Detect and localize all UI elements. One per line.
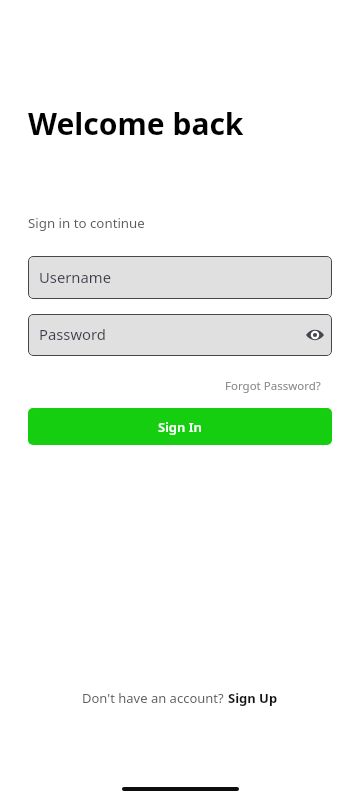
staticText: Don't have an account? [82, 689, 228, 707]
staticText: Sign Up [228, 689, 278, 707]
button[interactable]: Show password [303, 323, 327, 347]
staticText: Sign in to continue [28, 214, 145, 232]
button[interactable]: Sign Up [228, 689, 278, 707]
staticText: Username [39, 267, 111, 287]
staticText: Password [39, 324, 106, 344]
button[interactable]: Sign In [28, 408, 332, 445]
staticText: Forgot Password? [225, 378, 321, 394]
button[interactable]: Password [28, 314, 332, 356]
button[interactable]: Forgot Password? [236, 375, 332, 397]
staticText: Welcome back [28, 103, 244, 144]
button[interactable]: Username [28, 256, 332, 299]
staticText: Sign In [158, 418, 202, 436]
